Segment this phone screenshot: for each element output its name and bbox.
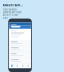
- staticText: Account Summary: [3, 3, 24, 7]
- staticText: Track balances, spending and recent acti…: [3, 8, 22, 19]
